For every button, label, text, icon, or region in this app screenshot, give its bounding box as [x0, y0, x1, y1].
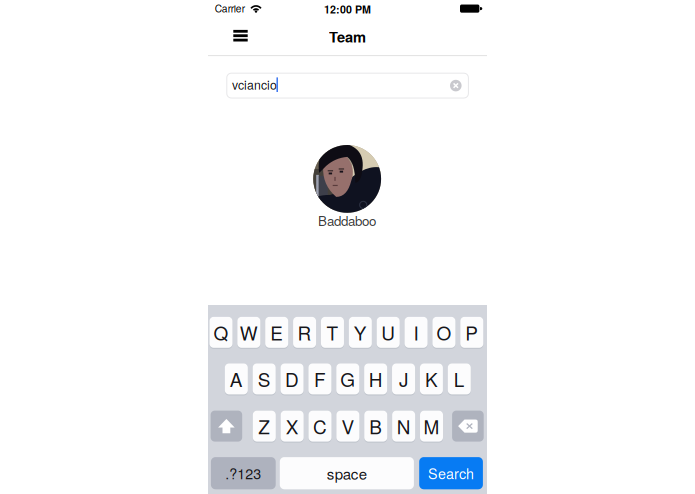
button[interactable]: Q: [209, 317, 232, 348]
staticText: Carrier: [215, 1, 245, 15]
staticText: E: [270, 319, 283, 346]
button[interactable]: X: [281, 411, 304, 442]
button[interactable]: Shift: [211, 411, 242, 442]
button[interactable]: V: [336, 411, 359, 442]
button[interactable]: H: [364, 363, 387, 394]
staticText: H: [369, 365, 383, 392]
button[interactable]: W: [237, 317, 260, 348]
staticText: Q: [213, 319, 228, 346]
button[interactable]: D: [281, 363, 304, 394]
button[interactable]: B: [364, 411, 387, 442]
staticText: Z: [258, 412, 270, 440]
staticText: Search: [428, 463, 474, 483]
button[interactable]: K: [420, 363, 443, 394]
button[interactable]: [227, 73, 468, 98]
button[interactable]: L: [448, 363, 471, 394]
button[interactable]: M: [420, 411, 443, 442]
button[interactable]: Delete: [452, 411, 484, 442]
button[interactable]: space: [280, 457, 414, 489]
staticText: T: [326, 319, 338, 346]
button[interactable]: N: [392, 411, 415, 442]
staticText: B: [369, 412, 382, 440]
staticText: L: [454, 365, 465, 392]
staticText: G: [340, 365, 355, 392]
staticText: F: [314, 365, 326, 392]
staticText: D: [285, 365, 299, 392]
button[interactable]: Y: [349, 317, 372, 348]
button[interactable]: R: [293, 317, 316, 348]
staticText: .?123: [225, 463, 261, 483]
button[interactable]: J: [392, 363, 415, 394]
staticText: N: [397, 412, 411, 440]
button[interactable]: I: [405, 317, 428, 348]
button[interactable]: Z: [253, 411, 276, 442]
staticText: P: [465, 319, 478, 346]
staticText: O: [436, 319, 451, 346]
staticText: S: [258, 365, 271, 392]
button[interactable]: G: [336, 363, 359, 394]
staticText: Y: [354, 319, 367, 346]
button[interactable]: Baddaboo profile photo: [313, 145, 382, 213]
staticText: A: [230, 365, 243, 392]
button[interactable]: P: [460, 317, 483, 348]
staticText: C: [313, 412, 327, 440]
staticText: I: [414, 319, 419, 346]
staticText: J: [399, 365, 408, 392]
button[interactable]: .?123: [211, 457, 276, 489]
button[interactable]: S: [253, 363, 276, 394]
staticText: X: [286, 412, 299, 440]
button[interactable]: U: [377, 317, 400, 348]
button[interactable]: A: [225, 363, 248, 394]
staticText: R: [298, 319, 312, 346]
staticText: vciancio: [232, 76, 277, 93]
staticText: space: [327, 462, 367, 484]
button[interactable]: Clear text: [444, 74, 468, 98]
button[interactable]: Search: [419, 457, 483, 489]
button[interactable]: E: [265, 317, 288, 348]
staticText: M: [423, 412, 439, 440]
button[interactable]: F: [308, 363, 331, 394]
staticText: 12:00 PM: [324, 1, 371, 17]
button[interactable]: C: [308, 411, 331, 442]
button[interactable]: T: [321, 317, 344, 348]
staticText: Team: [329, 26, 366, 47]
button[interactable]: O: [432, 317, 455, 348]
staticText: V: [341, 412, 354, 440]
staticText: Baddaboo: [318, 211, 376, 230]
staticText: U: [381, 319, 395, 346]
button[interactable]: Menu: [219, 18, 261, 54]
staticText: W: [240, 319, 258, 346]
staticText: K: [425, 365, 438, 392]
